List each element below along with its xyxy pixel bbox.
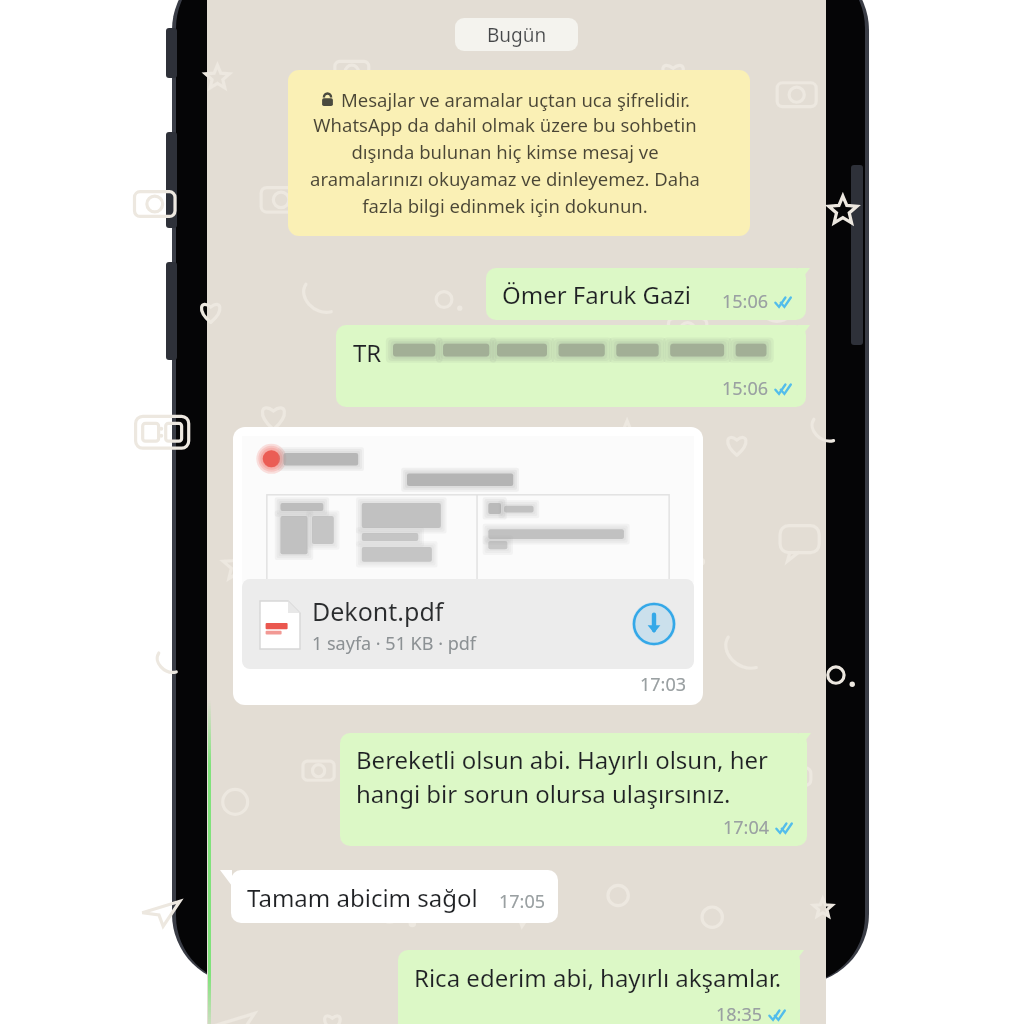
button[interactable]: Bereketli olsun abi. Hayırlı olsun, her … [340,733,807,846]
staticText: Mesajlar ve aramalar uçtan uca şifrelidi… [341,87,690,112]
staticText: 18:35 [716,1002,763,1024]
staticText: 1 sayfa · 51 KB · pdf [312,631,476,656]
staticText: Bereketli olsun abi. Hayırlı olsun, her … [356,743,768,810]
staticText: 15:06 [722,376,769,401]
button[interactable]: Bugün [455,18,578,51]
staticText: WhatsApp da dahil olmak üzere bu sohbeti… [310,112,700,219]
button[interactable]: TR [336,325,806,407]
staticText: Bugün [487,22,547,48]
button[interactable]: Tamam abicim sağol [231,870,558,923]
button[interactable]: Dekont.pdf [242,579,694,669]
staticText: Dekont.pdf [312,594,444,628]
staticText: Ömer Faruk Gazi [502,278,691,311]
button[interactable]: İndir [632,602,676,646]
staticText: TR [353,336,382,369]
staticText: 15:06 [722,289,769,314]
button[interactable]: Dekont.pdf [233,427,703,705]
staticText: Tamam abicim sağol [247,881,478,914]
staticText: Rica ederim abi, hayırlı akşamlar. [414,961,782,994]
staticText: 17:04 [723,815,770,840]
button[interactable]: Rica ederim abi, hayırlı akşamlar. [398,950,800,1024]
staticText: 17:05 [499,889,546,914]
button[interactable]: Mesajlar ve aramalar uçtan uca şifrelidi… [288,70,750,236]
button[interactable]: Ömer Faruk Gazi [486,268,806,320]
staticText: 17:03 [640,672,687,697]
